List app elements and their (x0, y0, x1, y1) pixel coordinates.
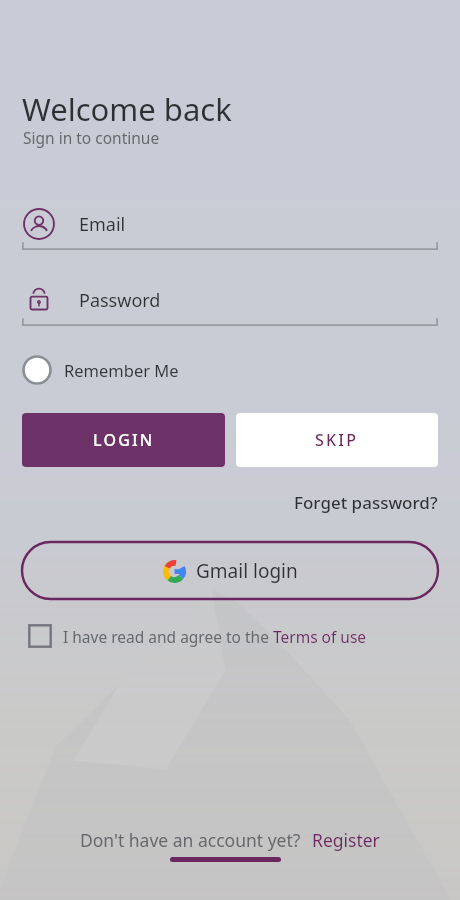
button[interactable]: Email (22, 198, 438, 250)
staticText: I have read and agree to the (63, 626, 273, 647)
button[interactable]: Password (22, 274, 438, 326)
staticText: Gmail login (196, 558, 298, 584)
staticText: SKIP (315, 429, 359, 451)
staticText: Password (79, 288, 161, 313)
staticText: Welcome back (22, 88, 232, 130)
button[interactable]: SKIP (236, 413, 438, 467)
staticText: Register (312, 828, 380, 852)
button[interactable]: Forget password? (255, 485, 438, 519)
staticText: Sign in to continue (23, 127, 160, 148)
staticText: Email (79, 212, 126, 237)
other: Password (22, 283, 56, 317)
button[interactable]: Terms of use (273, 626, 367, 647)
button[interactable]: I have read and agree to the (28, 618, 367, 654)
other: Email (22, 207, 56, 241)
staticText: Terms of use (273, 626, 367, 647)
button[interactable]: Gmail login (22, 542, 438, 599)
button[interactable]: Remember Me (22, 354, 179, 386)
staticText: Don't have an account yet? (80, 828, 301, 852)
button[interactable]: LOGIN (22, 413, 225, 467)
button[interactable]: Register (312, 828, 380, 852)
staticText: LOGIN (93, 429, 155, 451)
staticText: Remember Me (64, 359, 179, 381)
staticText: Forget password? (294, 491, 438, 514)
